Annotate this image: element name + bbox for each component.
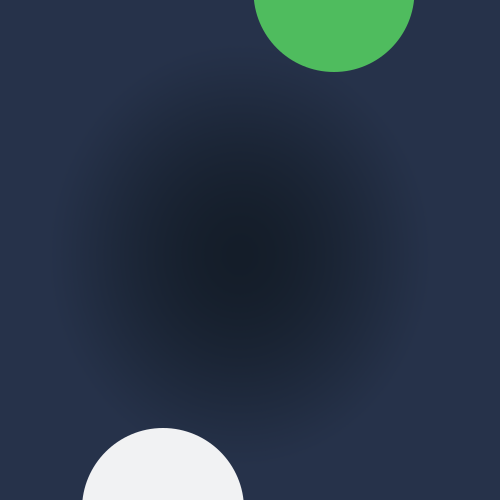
button[interactable]: Continue xyxy=(253,0,414,72)
button[interactable]: Learn more xyxy=(82,428,244,500)
